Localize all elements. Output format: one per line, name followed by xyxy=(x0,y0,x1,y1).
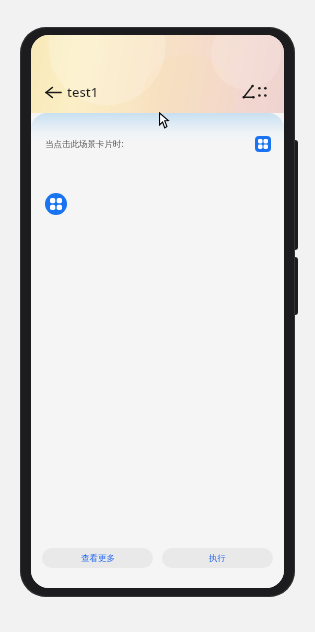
button[interactable]: 执行 xyxy=(162,548,273,568)
staticText: 查看更多 xyxy=(81,553,115,564)
staticText: 执行 xyxy=(209,553,226,564)
button[interactable]: Back xyxy=(43,81,101,103)
button[interactable]: 查看更多 xyxy=(42,548,153,568)
other: Grid xyxy=(255,136,271,152)
staticText: test1 xyxy=(67,83,99,101)
staticText: 当点击此场景卡片时: xyxy=(45,138,124,150)
button[interactable]: 当点击此场景卡片时: xyxy=(31,133,284,155)
button[interactable]: Add action xyxy=(45,193,67,215)
button[interactable]: More options xyxy=(240,82,272,103)
other: Back xyxy=(45,84,62,101)
